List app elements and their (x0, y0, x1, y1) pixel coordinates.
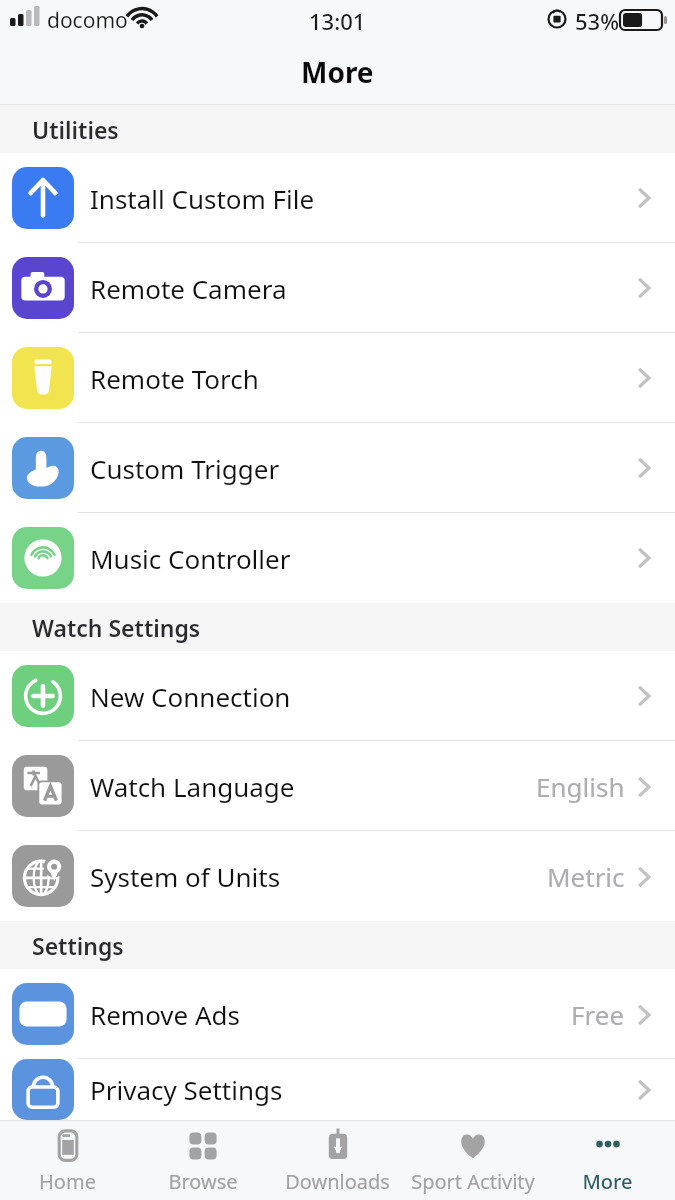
button[interactable]: Remove Ads (0, 969, 675, 1059)
staticText: Music Controller (90, 541, 291, 576)
button[interactable]: Sport Activity (405, 1121, 540, 1200)
button[interactable]: New Connection (0, 651, 675, 741)
button[interactable]: Custom Trigger (0, 423, 675, 513)
staticText: Install Custom File (90, 181, 315, 216)
staticText: Remote Torch (90, 361, 259, 396)
button[interactable]: More (540, 1121, 675, 1200)
button[interactable]: System of Units (0, 831, 675, 921)
button[interactable]: Browse (135, 1121, 270, 1200)
staticText: Settings (32, 930, 124, 961)
staticText: Downloads (285, 1168, 390, 1195)
button[interactable]: Remote Torch (0, 333, 675, 423)
staticText: Privacy Settings (90, 1072, 283, 1107)
staticText: More (582, 1168, 633, 1195)
staticText: More (301, 53, 374, 91)
button[interactable]: Home (0, 1121, 135, 1200)
button[interactable]: Remote Camera (0, 243, 675, 333)
staticText: Home (39, 1168, 96, 1195)
button[interactable]: Watch Language (0, 741, 675, 831)
staticText: Utilities (32, 114, 119, 145)
staticText: Remove Ads (90, 997, 241, 1032)
button[interactable]: Music Controller (0, 513, 675, 603)
button[interactable]: Install Custom File (0, 153, 675, 243)
staticText: 53% (575, 6, 619, 36)
staticText: Remote Camera (90, 271, 287, 306)
button[interactable]: Privacy Settings (0, 1059, 675, 1120)
staticText: Browse (168, 1168, 238, 1195)
staticText: Watch Language (90, 769, 295, 804)
staticText: docomo (47, 6, 128, 35)
staticText: Metric (547, 859, 625, 894)
staticText: System of Units (90, 859, 281, 894)
staticText: English (536, 769, 625, 804)
button[interactable]: Downloads (270, 1121, 405, 1200)
staticText: 13:01 (309, 6, 366, 36)
staticText: Free (571, 997, 625, 1032)
staticText: Watch Settings (32, 612, 201, 643)
staticText: Custom Trigger (90, 451, 280, 486)
staticText: Sport Activity (411, 1168, 535, 1195)
staticText: New Connection (90, 679, 291, 714)
